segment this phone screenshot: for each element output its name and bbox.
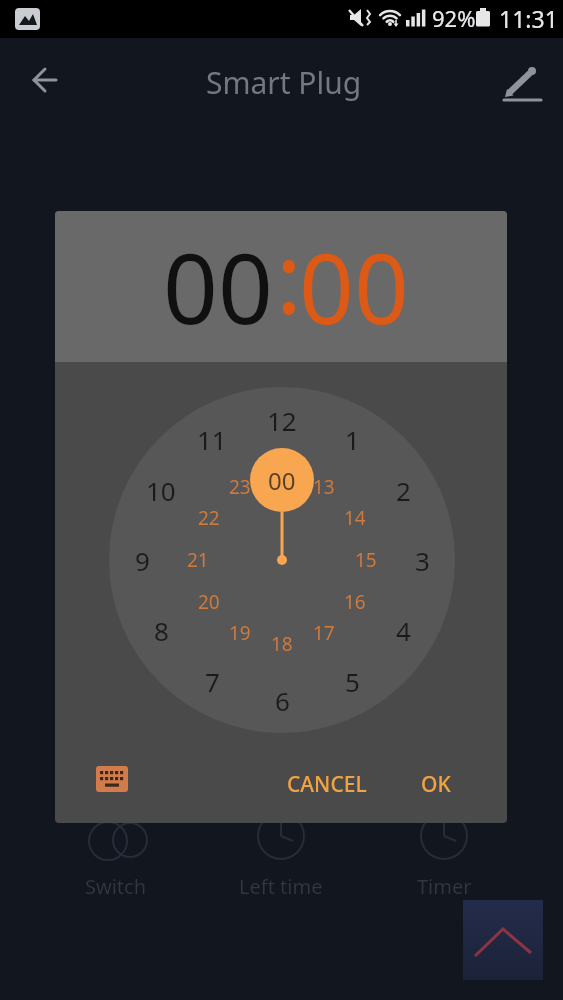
staticText: 92% xyxy=(432,3,476,33)
staticText: 19 xyxy=(229,620,251,646)
staticText: Smart Plug xyxy=(206,62,362,103)
staticText: 1 xyxy=(345,422,360,457)
staticText: 3 xyxy=(415,543,430,578)
staticText: Timer xyxy=(417,873,472,900)
staticText: 11 xyxy=(197,422,227,457)
staticText: 16 xyxy=(344,589,366,615)
button[interactable]: Switch xyxy=(16,846,216,926)
staticText: 5 xyxy=(345,664,360,699)
staticText: Switch xyxy=(85,873,147,900)
staticText: 10 xyxy=(146,473,176,508)
staticText: 18 xyxy=(271,631,293,657)
button[interactable] xyxy=(96,766,128,792)
staticText: 8 xyxy=(154,613,169,648)
staticText: 00 xyxy=(268,464,296,497)
staticText: 00 xyxy=(299,221,409,352)
staticText: 20 xyxy=(198,589,220,615)
staticText: 7 xyxy=(205,664,220,699)
button[interactable] xyxy=(500,57,544,101)
button[interactable]: Timer xyxy=(344,846,544,926)
button[interactable] xyxy=(28,64,62,98)
staticText: 6 xyxy=(275,683,290,718)
button[interactable]: CANCEL xyxy=(227,744,427,823)
staticText: CANCEL xyxy=(287,770,367,799)
staticText: 17 xyxy=(313,620,335,646)
button[interactable]: Left time xyxy=(181,846,381,926)
staticText: 2 xyxy=(396,473,411,508)
staticText: 9 xyxy=(135,543,150,578)
staticText: 12 xyxy=(267,403,297,438)
staticText: 11:31 xyxy=(499,3,558,34)
button[interactable]: OK xyxy=(336,744,507,823)
staticText: 22 xyxy=(198,505,220,531)
staticText: 15 xyxy=(355,547,377,573)
staticText: 14 xyxy=(344,505,366,531)
staticText: : xyxy=(276,211,302,342)
staticText: 4 xyxy=(396,613,411,648)
staticText: OK xyxy=(421,770,451,799)
staticText: 00 xyxy=(163,221,273,352)
staticText: 13 xyxy=(313,474,335,500)
staticText: Left time xyxy=(239,873,323,900)
staticText: 21 xyxy=(187,547,209,573)
staticText: 23 xyxy=(229,474,251,500)
